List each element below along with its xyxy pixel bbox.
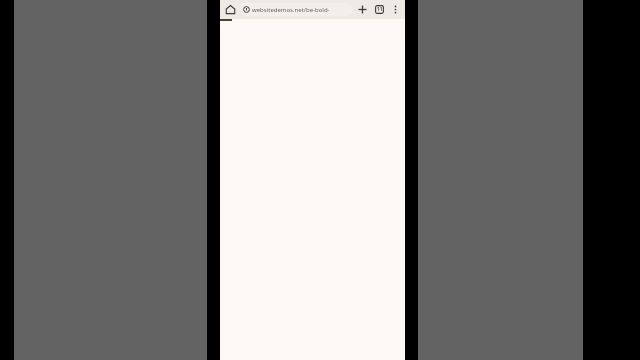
button[interactable]: More options [388, 2, 403, 17]
button[interactable]: websitedemos.net/be-bold- [240, 3, 353, 16]
button[interactable]: New tab [355, 2, 370, 17]
staticText: websitedemos.net/be-bold- [252, 6, 330, 14]
button[interactable]: Home [223, 2, 238, 17]
staticText: 11 [377, 6, 383, 13]
button[interactable]: Switch tabs [372, 2, 387, 17]
